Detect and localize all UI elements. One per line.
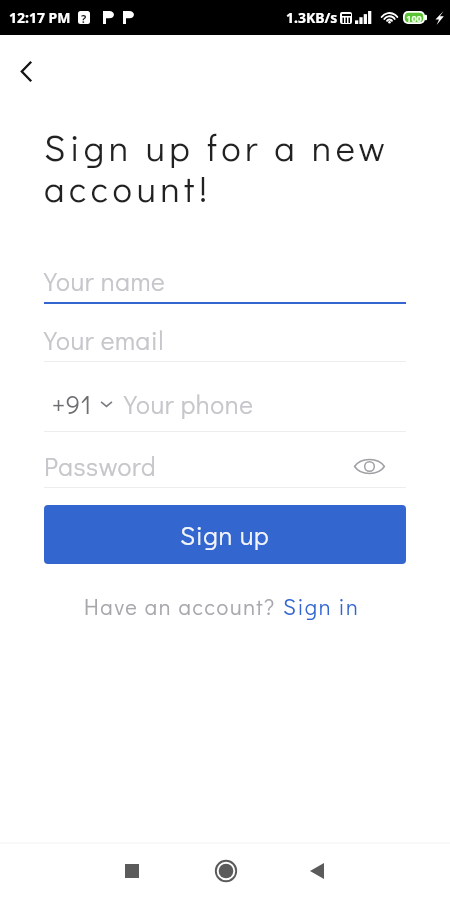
staticText: 1.3KB/s xyxy=(286,8,338,27)
staticText: ? xyxy=(81,11,87,24)
staticText: Your name xyxy=(44,264,166,298)
button[interactable]: Home xyxy=(198,843,254,899)
button[interactable]: Sign in xyxy=(283,592,360,621)
staticText: Sign up xyxy=(180,518,270,552)
button[interactable]: Your email xyxy=(44,314,406,372)
staticText: +91 xyxy=(52,387,92,421)
button[interactable]: Password xyxy=(44,440,406,487)
staticText: Your email xyxy=(44,323,165,357)
staticText: Your phone xyxy=(124,387,254,421)
button[interactable]: Recent apps xyxy=(106,843,162,899)
staticText: Password xyxy=(44,449,157,483)
button[interactable]: Show password xyxy=(349,446,389,486)
staticText: 12:17 PM xyxy=(9,8,71,27)
button[interactable]: Your name xyxy=(44,255,406,314)
button[interactable]: +91 xyxy=(44,372,406,440)
button[interactable]: Back xyxy=(289,843,345,899)
button[interactable]: Back xyxy=(2,47,50,95)
staticText: 100 xyxy=(406,12,422,24)
staticText: Have an account? xyxy=(84,592,283,621)
staticText: Sign up for a new account! xyxy=(44,123,410,211)
button[interactable]: Sign up xyxy=(44,505,406,564)
